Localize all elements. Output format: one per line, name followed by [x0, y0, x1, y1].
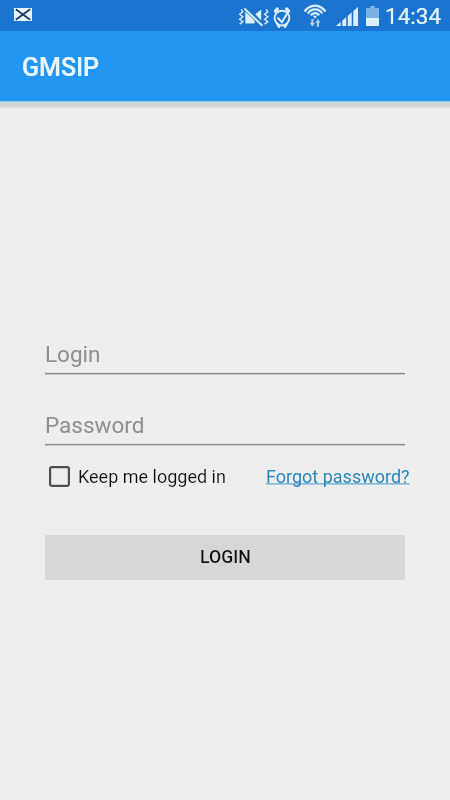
staticText: Login [45, 341, 101, 367]
button[interactable]: Password [45, 406, 405, 446]
staticText: 14:34 [385, 3, 442, 29]
other: Keep me logged in checkbox [49, 466, 70, 487]
button[interactable]: Forgot password? [266, 466, 410, 487]
staticText: Password [45, 412, 145, 438]
button[interactable]: LOGIN [45, 535, 405, 580]
button[interactable]: Login [45, 335, 405, 375]
staticText: GMSIP [22, 53, 100, 82]
button[interactable]: Keep me logged in checkbox [49, 466, 226, 487]
staticText: Keep me logged in [78, 466, 226, 487]
staticText: LOGIN [200, 547, 251, 568]
